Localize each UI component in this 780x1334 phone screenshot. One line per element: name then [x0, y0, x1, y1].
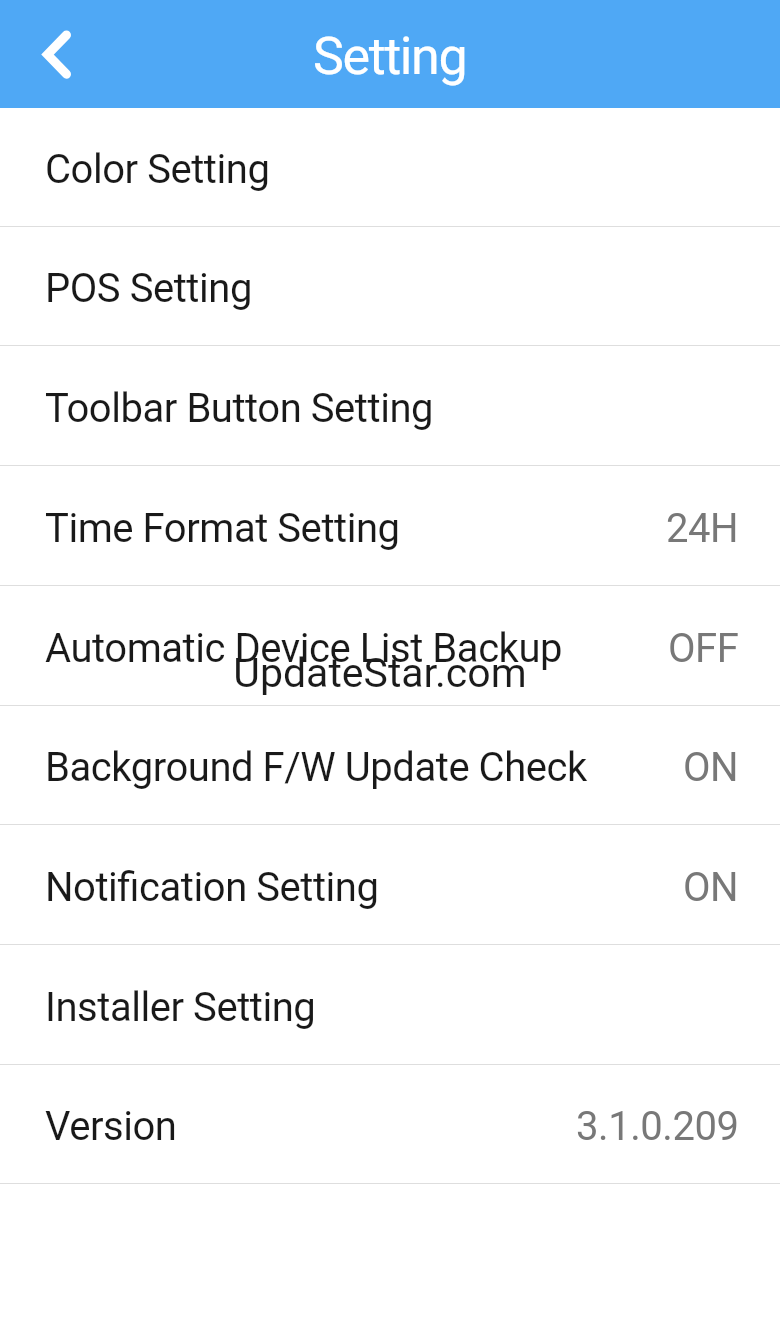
staticText: Time Format Setting: [45, 505, 400, 552]
button[interactable]: Installer Setting: [0, 945, 780, 1065]
staticText: Setting: [313, 26, 467, 87]
button[interactable]: Color Setting: [0, 107, 780, 227]
staticText: ON: [683, 744, 739, 791]
staticText: Installer Setting: [45, 984, 316, 1031]
staticText: Notification Setting: [45, 864, 379, 911]
staticText: Color Setting: [45, 146, 270, 193]
staticText: 3.1.0.209: [576, 1103, 739, 1150]
button[interactable]: Back: [0, 0, 112, 108]
staticText: UpdateStar.com: [233, 649, 527, 697]
staticText: Version: [45, 1103, 177, 1150]
staticText: Background F/W Update Check: [45, 744, 587, 791]
button[interactable]: Notification Setting: [0, 825, 780, 945]
button[interactable]: Automatic Device List Backup: [0, 586, 780, 706]
staticText: 24H: [666, 505, 739, 552]
staticText: Automatic Device List Backup: [45, 625, 563, 672]
staticText: Toolbar Button Setting: [45, 385, 434, 432]
button[interactable]: Time Format Setting: [0, 466, 780, 586]
staticText: ON: [683, 864, 739, 911]
button[interactable]: Toolbar Button Setting: [0, 346, 780, 466]
button[interactable]: Background F/W Update Check: [0, 706, 780, 825]
staticText: POS Setting: [45, 265, 252, 312]
button[interactable]: Version: [0, 1065, 780, 1184]
button[interactable]: POS Setting: [0, 227, 780, 346]
staticText: OFF: [668, 625, 739, 672]
